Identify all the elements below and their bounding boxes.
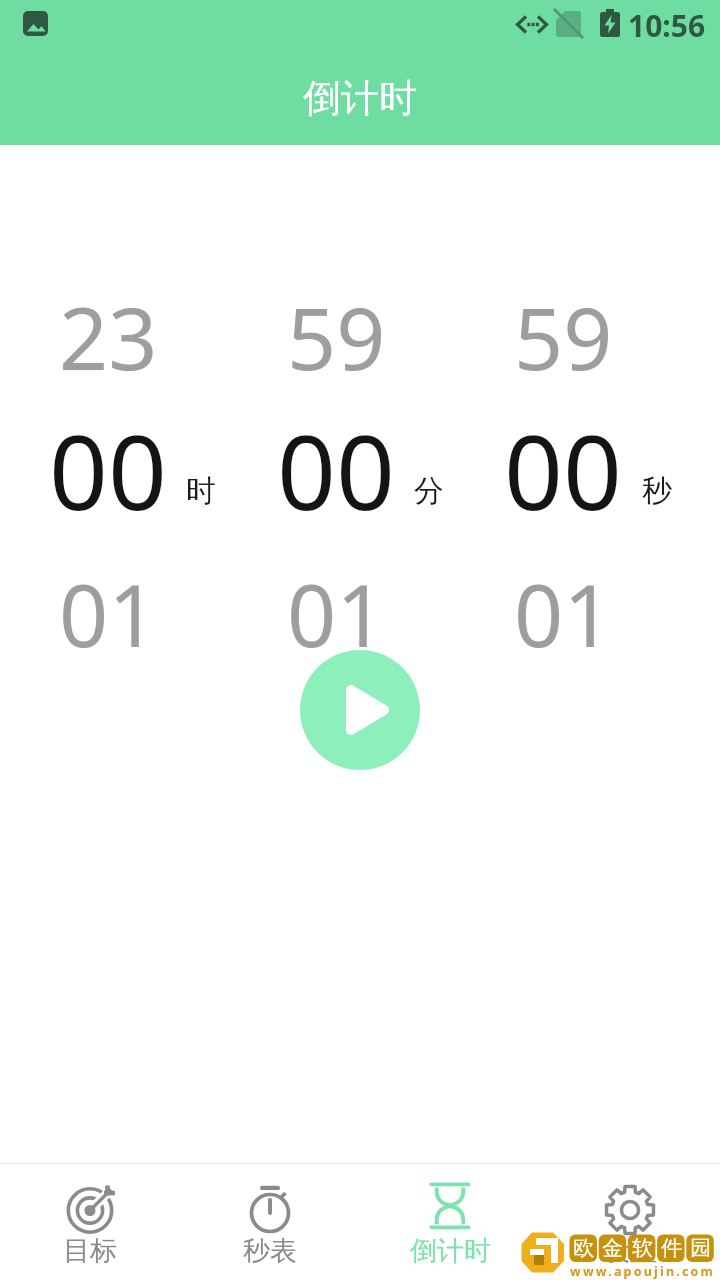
staticText: 00 xyxy=(277,400,395,540)
button[interactable]: 目标 xyxy=(0,1163,180,1280)
staticText: 00 xyxy=(504,400,622,540)
staticText: 金 xyxy=(602,1235,623,1261)
button[interactable]: 倒计时 xyxy=(360,1163,540,1280)
staticText: 倒计时 xyxy=(303,74,417,122)
staticText: 23 xyxy=(59,278,158,395)
staticText: 倒计时 xyxy=(410,1234,491,1268)
staticText: 01 xyxy=(287,555,386,672)
staticText: 软 xyxy=(632,1235,653,1261)
staticText: 10:56 xyxy=(628,5,706,45)
staticText: 59 xyxy=(287,278,386,395)
button[interactable] xyxy=(300,650,420,770)
staticText: 01 xyxy=(59,555,158,672)
staticText: 59 xyxy=(514,278,613,395)
staticText: 欧 xyxy=(573,1235,594,1261)
staticText: 秒 xyxy=(642,472,672,510)
button[interactable]: 秒表 xyxy=(180,1163,360,1280)
staticText: 00 xyxy=(49,400,167,540)
staticText: 设置 xyxy=(603,1234,657,1268)
staticText: 分 xyxy=(414,472,444,510)
staticText: 秒表 xyxy=(243,1234,297,1268)
staticText: 时 xyxy=(186,472,216,510)
staticText: 件 xyxy=(661,1235,682,1261)
staticText: www.apoujin.com xyxy=(570,1263,715,1280)
staticText: 01 xyxy=(514,555,613,672)
staticText: 园 xyxy=(690,1235,711,1261)
button[interactable]: 设置 xyxy=(540,1163,720,1280)
staticText: 目标 xyxy=(63,1234,117,1268)
